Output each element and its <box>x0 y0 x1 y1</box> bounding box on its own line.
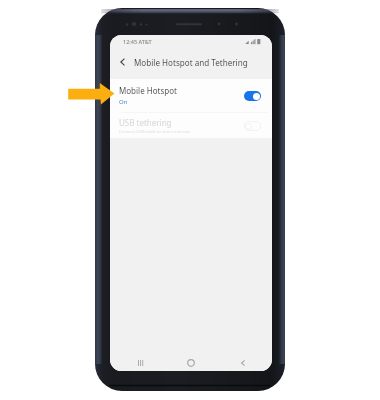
button[interactable]: Recent apps <box>132 355 148 371</box>
staticText: On <box>119 98 128 106</box>
button[interactable]: USB tethering <box>110 113 272 138</box>
staticText: Connect USB cable to share internet <box>119 129 190 135</box>
button[interactable]: Back <box>235 355 251 371</box>
staticText: Mobile Hotspot and Tethering <box>134 57 248 68</box>
staticText: Mobile Hotspot <box>119 85 177 96</box>
staticText: USB tethering <box>119 117 172 128</box>
button[interactable]: Home <box>183 355 199 371</box>
button[interactable]: Turn on <box>244 121 261 131</box>
button[interactable]: Turn off <box>244 91 261 101</box>
button[interactable]: Back <box>110 48 134 76</box>
button[interactable]: Mobile Hotspot <box>110 79 272 112</box>
staticText: 12:45 AT&T <box>123 38 152 45</box>
